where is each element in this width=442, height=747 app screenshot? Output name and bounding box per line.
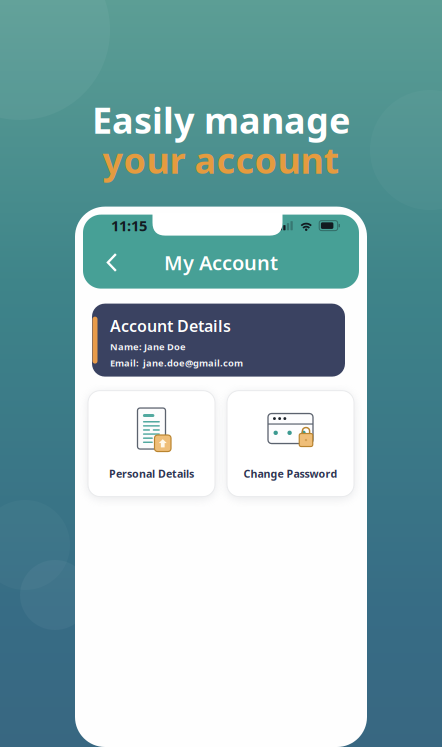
staticText: Personal Details — [109, 466, 194, 481]
button[interactable]: Personal Details — [88, 391, 215, 497]
staticText: your account — [102, 136, 339, 184]
staticText: My Account — [164, 249, 278, 276]
staticText: Easily manage — [92, 96, 350, 144]
staticText: Account Details — [110, 315, 231, 336]
staticText: Change Password — [243, 466, 337, 481]
button[interactable]: Change Password — [227, 391, 354, 497]
staticText: Name: Jane Doe — [110, 340, 186, 353]
staticText: 11:15 — [111, 216, 147, 235]
staticText: Email: jane.doe@gmail.com — [110, 357, 243, 369]
button[interactable]: Back — [83, 247, 128, 279]
